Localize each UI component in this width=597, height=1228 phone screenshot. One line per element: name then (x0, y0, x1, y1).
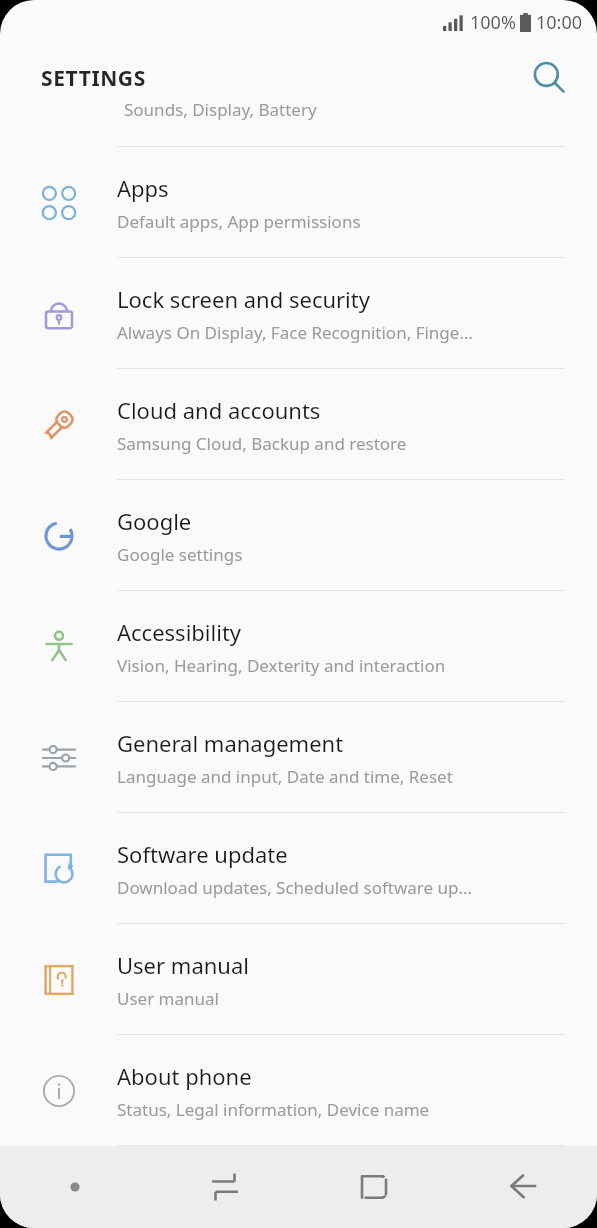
button[interactable]: Google (0, 480, 597, 591)
staticText: Accessibility (117, 617, 242, 647)
button[interactable]: Accessibility (0, 591, 597, 702)
staticText: Lock screen and security (117, 284, 370, 314)
button[interactable]: User manual (0, 924, 597, 1035)
staticText: Google (117, 506, 192, 536)
staticText: Status, Legal information, Device name (117, 1098, 430, 1121)
button[interactable]: General management (0, 702, 597, 813)
staticText: Always On Display, Face Recognition, Fin… (117, 321, 473, 344)
staticText: Vision, Hearing, Dexterity and interacti… (117, 654, 446, 677)
staticText: SETTINGS (41, 64, 146, 93)
staticText: 100% (470, 10, 516, 35)
staticText: User manual (117, 950, 249, 980)
staticText: General management (117, 728, 344, 758)
staticText: About phone (117, 1061, 252, 1091)
button[interactable]: Search (527, 56, 571, 100)
button[interactable]: Apps (0, 147, 597, 258)
staticText: User manual (117, 987, 219, 1010)
button[interactable]: About phone (0, 1035, 597, 1146)
button[interactable]: Home (299, 1146, 448, 1228)
button[interactable]: Software update (0, 813, 597, 924)
staticText: Software update (117, 839, 288, 869)
staticText: Cloud and accounts (117, 395, 321, 425)
staticText: Samsung Cloud, Backup and restore (117, 432, 407, 455)
staticText: Download updates, Scheduled software up… (117, 876, 472, 899)
staticText: 10:00 (536, 10, 583, 35)
button[interactable]: Lock screen and security (0, 258, 597, 369)
staticText: Sounds, Display, Battery (124, 98, 317, 121)
staticText: Language and input, Date and time, Reset (117, 765, 453, 788)
button[interactable]: Cloud and accounts (0, 369, 597, 480)
staticText: Apps (117, 173, 169, 203)
button[interactable]: Recents (150, 1146, 299, 1228)
button[interactable]: Back (448, 1146, 597, 1228)
staticText: Google settings (117, 543, 243, 566)
staticText: Default apps, App permissions (117, 210, 361, 233)
